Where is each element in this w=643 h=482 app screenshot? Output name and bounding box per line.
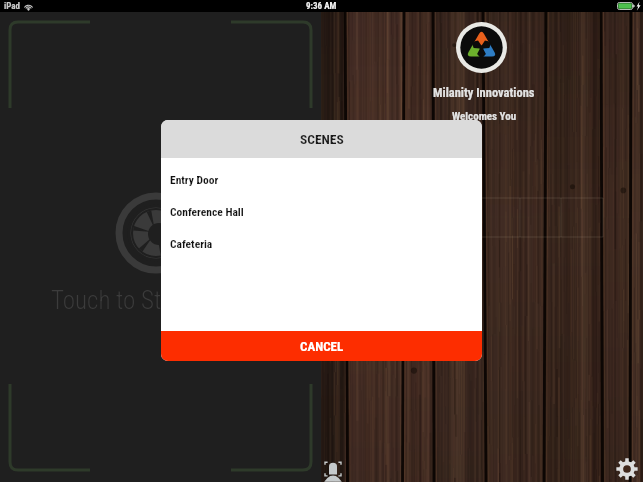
staticText: Cafeteria xyxy=(170,237,213,250)
staticText: Conference Hall xyxy=(170,205,244,218)
button[interactable]: Touch to Start xyxy=(0,0,321,482)
staticText: iPad xyxy=(4,1,21,12)
staticText: Welcomes You xyxy=(452,110,517,123)
staticText: SCENES xyxy=(300,131,344,147)
button[interactable]: CANCEL xyxy=(161,331,482,361)
staticText: Entry Door xyxy=(170,173,219,186)
staticText: 9:36 AM xyxy=(306,1,337,12)
button[interactable]: Account xyxy=(323,460,343,482)
staticText: CANCEL xyxy=(300,339,344,354)
button[interactable]: Entry Door xyxy=(161,163,482,195)
button[interactable]: Cafeteria xyxy=(161,227,482,259)
staticText: Milanity Innovations xyxy=(433,85,535,100)
staticText: Touch to Start xyxy=(51,286,189,315)
button[interactable]: Conference Hall xyxy=(161,195,482,227)
button[interactable]: Settings xyxy=(616,458,638,480)
